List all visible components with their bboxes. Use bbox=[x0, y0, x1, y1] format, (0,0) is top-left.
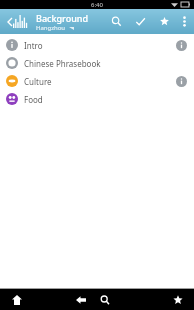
button[interactable]: Favourites bbox=[162, 289, 194, 310]
button[interactable]: Background bbox=[36, 12, 104, 32]
button[interactable]: Intro info bbox=[174, 38, 188, 52]
button[interactable]: Intro bbox=[0, 36, 194, 54]
button[interactable]: More options bbox=[176, 9, 192, 34]
staticText: Hangzhou bbox=[36, 24, 66, 32]
staticText: Food bbox=[24, 94, 188, 105]
button[interactable]: Culture bbox=[0, 72, 194, 90]
staticText: Background bbox=[36, 12, 89, 24]
button[interactable]: Search bbox=[104, 9, 128, 34]
staticText: 6:40 bbox=[91, 1, 103, 9]
button[interactable]: Navigate up bbox=[0, 9, 36, 34]
button[interactable]: Culture info bbox=[174, 74, 188, 88]
button[interactable]: Food bbox=[0, 90, 194, 108]
staticText: Chinese Phrasebook bbox=[24, 58, 188, 69]
button[interactable]: Chinese Phrasebook bbox=[0, 54, 194, 72]
button[interactable]: Favourite bbox=[152, 9, 176, 34]
button[interactable]: Home bbox=[0, 289, 33, 310]
staticText: Intro bbox=[24, 40, 174, 51]
button[interactable]: Back bbox=[69, 289, 93, 310]
button[interactable]: Check bbox=[128, 9, 152, 34]
staticText: Culture bbox=[24, 76, 174, 87]
button[interactable]: Search bbox=[93, 289, 117, 310]
